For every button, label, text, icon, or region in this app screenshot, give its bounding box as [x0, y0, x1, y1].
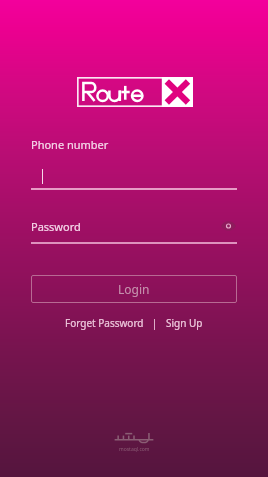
button[interactable]: Show password: [219, 218, 237, 234]
staticText: Sign Up: [166, 316, 203, 330]
staticText: mostaql.com: [119, 446, 150, 453]
button[interactable]: Sign Up: [166, 316, 203, 330]
staticText: Password: [31, 219, 219, 234]
staticText: Login: [118, 281, 150, 297]
button[interactable]: Password: [31, 217, 237, 235]
button[interactable]: Login: [31, 275, 237, 303]
staticText: |: [144, 316, 166, 330]
button[interactable]: Forget Password: [65, 316, 144, 330]
staticText: Phone number: [31, 137, 109, 152]
button[interactable]: [31, 164, 237, 188]
staticText: Forget Password: [65, 316, 144, 330]
